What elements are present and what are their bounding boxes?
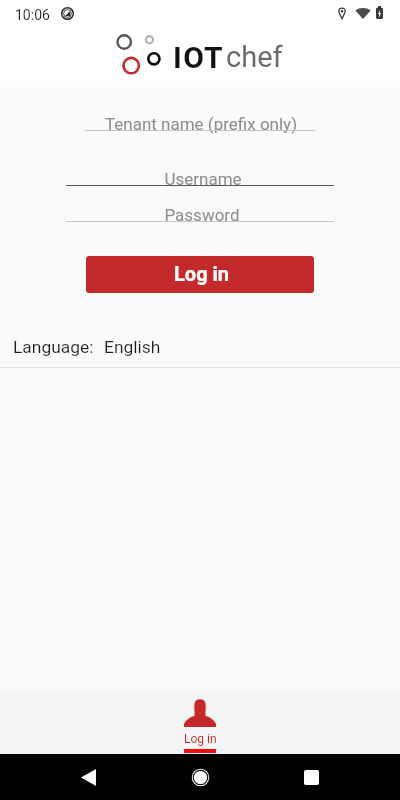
- button[interactable]: Back: [66, 754, 110, 800]
- staticText: Log in: [184, 732, 217, 746]
- button[interactable]: Log in: [86, 256, 314, 293]
- button[interactable]: Home: [178, 754, 222, 800]
- button[interactable]: Log in: [150, 693, 250, 754]
- other: Log in: [184, 699, 216, 727]
- button[interactable]: Recents: [289, 754, 333, 800]
- staticText: Username: [69, 169, 337, 189]
- staticText: IOT: [173, 40, 224, 75]
- staticText: English: [104, 337, 161, 357]
- button[interactable]: Username: [66, 158, 334, 186]
- staticText: chef: [226, 40, 283, 74]
- button[interactable]: Tenant name (prefix only): [85, 103, 315, 131]
- staticText: Log in: [174, 262, 230, 285]
- staticText: Tenant name (prefix only): [86, 114, 316, 134]
- staticText: 10:06: [15, 7, 50, 23]
- button[interactable]: Password: [66, 194, 334, 222]
- staticText: Language:: [13, 337, 94, 357]
- staticText: Password: [68, 205, 336, 225]
- button[interactable]: Language:: [0, 333, 400, 361]
